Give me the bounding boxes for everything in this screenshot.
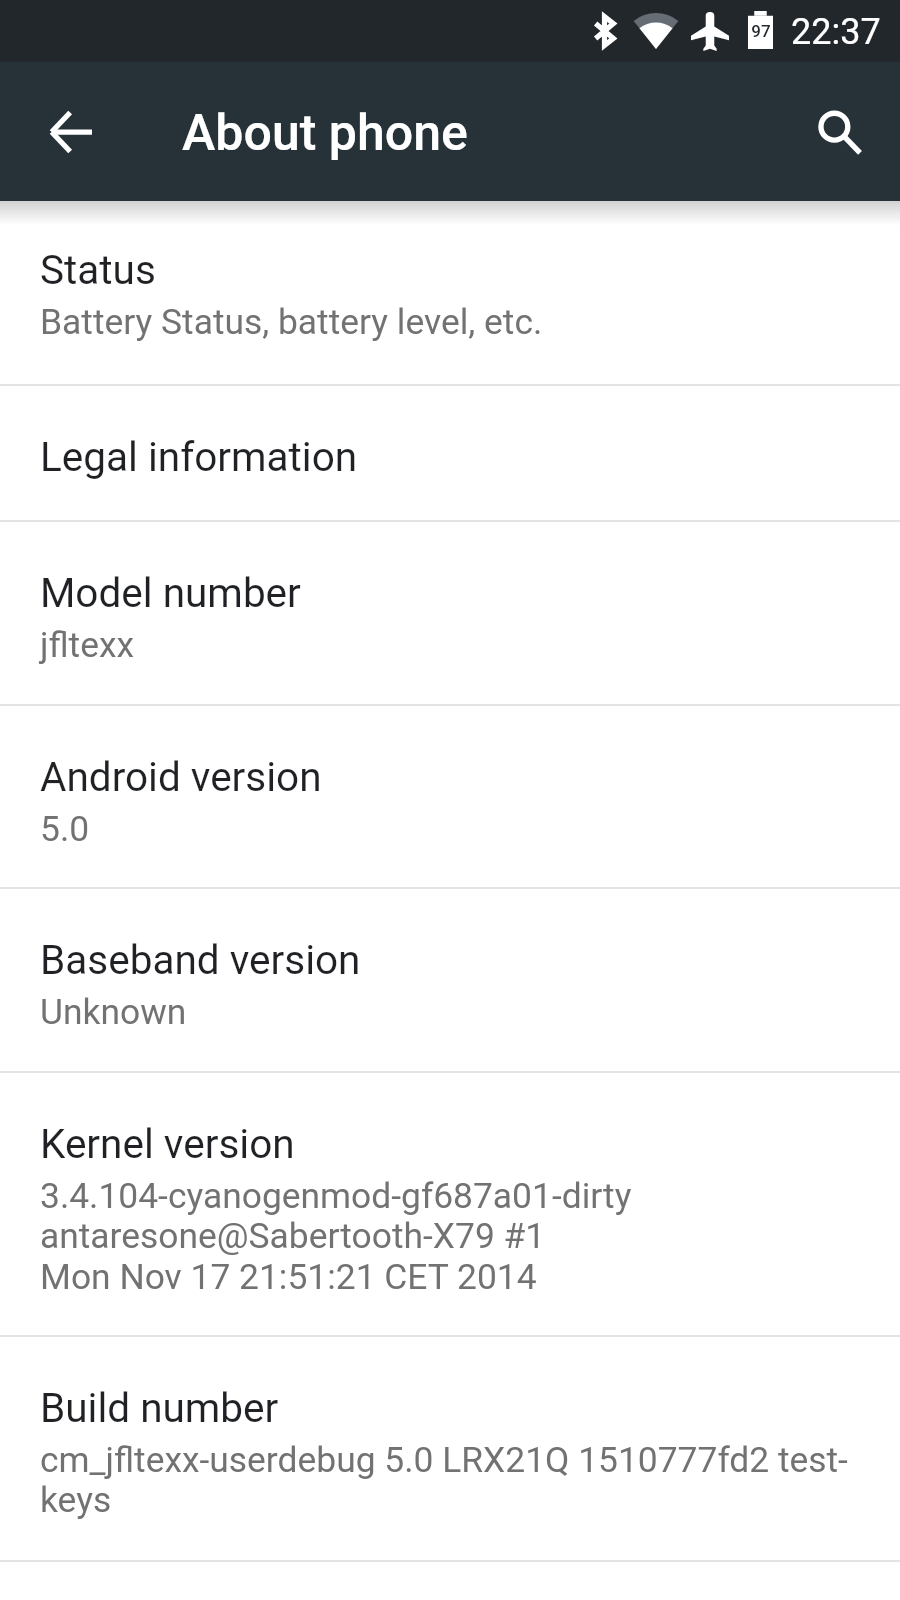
staticText: Kernel version bbox=[40, 1120, 295, 1167]
button[interactable]: Model number bbox=[0, 522, 900, 706]
staticText: Status bbox=[40, 246, 156, 293]
staticText: 22:37 bbox=[791, 11, 881, 53]
staticText: Build number bbox=[40, 1384, 279, 1431]
staticText: Battery Status, battery level, etc. bbox=[40, 301, 543, 342]
button[interactable]: Back bbox=[25, 86, 117, 178]
staticText: Unknown bbox=[40, 991, 187, 1032]
staticText: cm_jfltexx-userdebug 5.0 LRX21Q 1510777f… bbox=[40, 1439, 848, 1521]
button[interactable]: Baseband version bbox=[0, 889, 900, 1073]
staticText: 3.4.104-cyanogenmod-gf687a01-dirty antar… bbox=[40, 1175, 632, 1298]
staticText: 5.0 bbox=[40, 808, 90, 849]
staticText: jfltexx bbox=[40, 624, 135, 665]
button[interactable]: Search bbox=[794, 86, 886, 178]
button[interactable]: Status bbox=[0, 201, 900, 386]
staticText: Baseband version bbox=[40, 936, 361, 983]
button[interactable]: Android version bbox=[0, 706, 900, 889]
staticText: Android version bbox=[40, 753, 322, 800]
staticText: 97 bbox=[751, 21, 771, 41]
staticText: Legal information bbox=[40, 433, 358, 480]
staticText: Model number bbox=[40, 569, 301, 616]
button[interactable]: Legal information bbox=[0, 386, 900, 522]
button[interactable]: Kernel version bbox=[0, 1073, 900, 1337]
staticText: About phone bbox=[182, 104, 468, 163]
button[interactable]: Build number bbox=[0, 1337, 900, 1562]
